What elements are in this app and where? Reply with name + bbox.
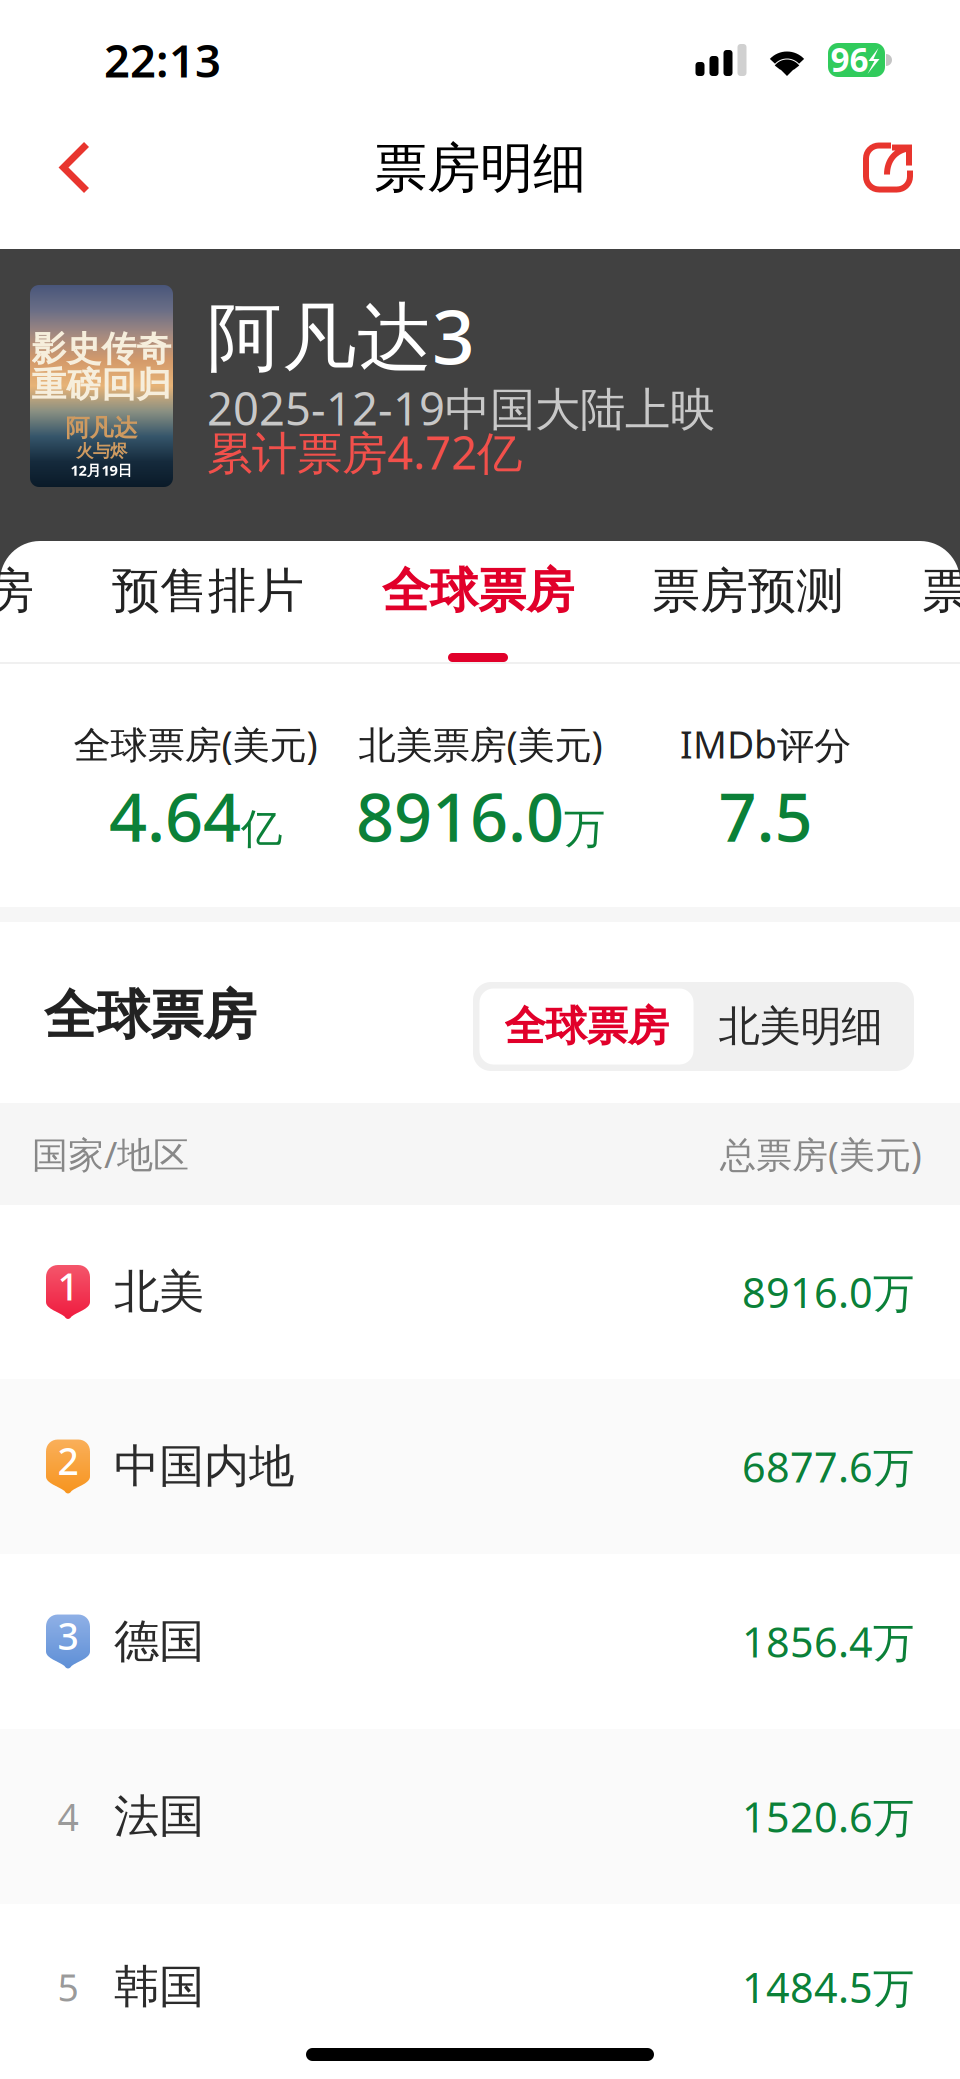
button[interactable]: 全球票房 bbox=[479, 988, 693, 1064]
staticText: 累计票房4.72亿 bbox=[207, 422, 522, 482]
staticText: 8916.0万 bbox=[742, 1265, 914, 1319]
staticText: 法国 bbox=[114, 1789, 204, 1844]
staticText: 亿 bbox=[241, 803, 282, 854]
button[interactable]: 3 bbox=[0, 1554, 960, 1729]
staticText: 火与烬 bbox=[76, 440, 127, 462]
staticText: 北美明细 bbox=[718, 1001, 882, 1052]
staticText: 预售排片 bbox=[112, 561, 304, 620]
button[interactable]: 1 bbox=[0, 1205, 960, 1379]
button[interactable]: Back bbox=[30, 122, 120, 212]
staticText: 12月19日 bbox=[70, 460, 132, 480]
staticText: 1 bbox=[57, 1261, 78, 1311]
staticText: 北美票房(美元) bbox=[358, 719, 602, 769]
staticText: 全球票房 bbox=[44, 983, 256, 1048]
button[interactable]: 北美明细 bbox=[693, 988, 907, 1064]
staticText: 票房日历 bbox=[922, 561, 960, 620]
staticText: 1484.5万 bbox=[742, 1960, 914, 2014]
staticText: 首日票房 bbox=[0, 561, 34, 620]
staticText: 重磅回归 bbox=[31, 364, 171, 406]
staticText: 票房明细 bbox=[374, 136, 586, 201]
button[interactable]: Share bbox=[843, 122, 933, 212]
staticText: 票房预测 bbox=[652, 561, 844, 620]
staticText: 阿凡达 bbox=[65, 413, 137, 443]
staticText: 韩国 bbox=[114, 1959, 204, 2015]
staticText: 总票房(美元) bbox=[720, 1130, 922, 1178]
staticText: 阿凡达3 bbox=[207, 285, 475, 385]
staticText: 中国内地 bbox=[114, 1439, 294, 1494]
staticText: 全球票房(美元) bbox=[73, 719, 317, 769]
staticText: 8916.0 bbox=[356, 772, 564, 860]
staticText: 影史传奇 bbox=[31, 328, 171, 370]
staticText: 3 bbox=[57, 1611, 78, 1660]
staticText: 德国 bbox=[114, 1614, 204, 1669]
staticText: 7.5 bbox=[718, 772, 812, 860]
button[interactable]: 票房预测 bbox=[613, 541, 883, 662]
staticText: 1856.4万 bbox=[742, 1614, 914, 1669]
button[interactable]: 2 bbox=[0, 1379, 960, 1554]
staticText: 全球票房 bbox=[382, 561, 574, 620]
staticText: 2025-12-19中国大陆上映 bbox=[207, 378, 715, 438]
staticText: 全球票房 bbox=[504, 1001, 668, 1052]
button[interactable]: 首日票房 bbox=[0, 541, 73, 662]
staticText: 5 bbox=[57, 1962, 78, 2012]
staticText: 6877.6万 bbox=[742, 1439, 914, 1494]
staticText: 4.64 bbox=[109, 772, 241, 860]
button[interactable]: 全球票房 bbox=[343, 541, 613, 662]
button[interactable]: 5 bbox=[0, 1904, 960, 2070]
button[interactable]: 预售排片 bbox=[73, 541, 343, 662]
staticText: 96 bbox=[830, 37, 868, 81]
staticText: 北美 bbox=[114, 1264, 204, 1320]
staticText: 国家/地区 bbox=[32, 1130, 189, 1178]
staticText: 22:13 bbox=[104, 30, 221, 90]
staticText: 1520.6万 bbox=[742, 1789, 914, 1844]
staticText: 万 bbox=[564, 803, 605, 854]
staticText: 4 bbox=[57, 1792, 78, 1841]
button[interactable]: 票房日历 bbox=[883, 541, 960, 662]
staticText: IMDb评分 bbox=[680, 719, 851, 769]
staticText: 2 bbox=[57, 1436, 78, 1485]
button[interactable]: 4 bbox=[0, 1729, 960, 1904]
